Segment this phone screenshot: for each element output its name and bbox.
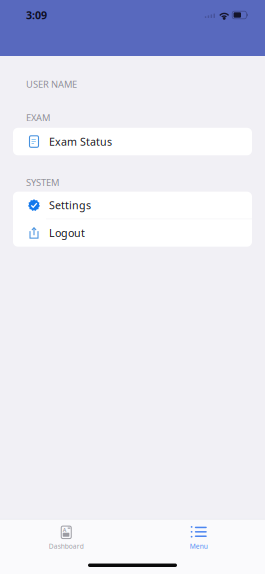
button[interactable]: A (0, 521, 132, 555)
staticText: Logout (49, 226, 85, 240)
staticText: Exam Status (49, 134, 112, 149)
button[interactable]: Settings (13, 192, 252, 219)
staticText: SYSTEM (26, 176, 59, 189)
staticText: Menu (190, 542, 208, 551)
staticText: 3:09 (26, 8, 47, 22)
staticText: Dashboard (49, 542, 84, 551)
staticText: A (63, 526, 67, 533)
staticText: USER NAME (26, 78, 77, 90)
staticText: EXAM (26, 111, 50, 124)
button[interactable]: Exam Status (13, 128, 252, 155)
button[interactable]: Menu (132, 521, 265, 555)
button[interactable]: Logout (13, 219, 252, 247)
staticText: Settings (49, 198, 91, 212)
